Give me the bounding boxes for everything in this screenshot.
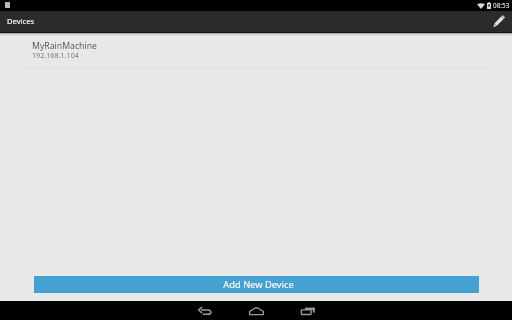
staticText: 08:53 [493,1,510,10]
staticText: 192.168.1.104 [32,50,79,60]
button[interactable]: Add New Device [34,276,479,293]
button[interactable]: Recent apps [293,301,323,320]
button[interactable]: Back [190,301,220,320]
staticText: Add New Device [223,278,294,291]
staticText: MyRainMachine [32,40,97,52]
button[interactable]: MyRainMachine [0,33,512,67]
staticText: Devices [7,16,35,26]
button[interactable]: Home [241,301,271,320]
button[interactable]: Edit [486,11,512,33]
